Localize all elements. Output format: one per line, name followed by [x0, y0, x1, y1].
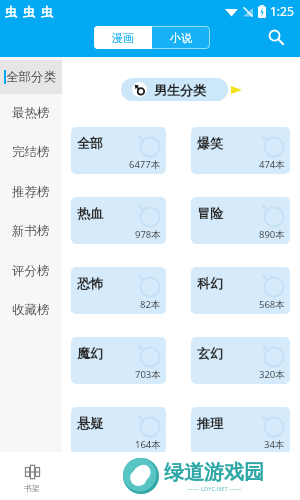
- staticText: 科幻: [197, 275, 223, 291]
- staticText: 164本: [135, 438, 161, 451]
- staticText: 魔幻: [77, 345, 103, 361]
- button[interactable]: Search: [264, 25, 288, 49]
- button[interactable]: 全部: [71, 127, 166, 174]
- staticText: —— LDYC.NET ——: [187, 485, 242, 493]
- staticText: 最热榜: [12, 105, 50, 121]
- staticText: 全部分类: [6, 69, 56, 85]
- staticText: 890本: [259, 228, 285, 241]
- staticText: 虫: [5, 4, 17, 19]
- button[interactable]: 小说: [152, 26, 210, 49]
- staticText: 推理: [197, 415, 223, 431]
- button[interactable]: 恐怖: [71, 267, 166, 314]
- staticText: 漫画: [112, 31, 134, 45]
- button[interactable]: 新书榜: [0, 211, 62, 250]
- button[interactable]: 收藏榜: [0, 290, 62, 329]
- button[interactable]: 悬疑: [71, 407, 166, 454]
- button[interactable]: 推理: [191, 407, 290, 454]
- staticText: 绿道游戏园: [164, 460, 264, 485]
- button[interactable]: 科幻: [191, 267, 290, 314]
- staticText: 568本: [259, 298, 285, 311]
- staticText: 新书榜: [12, 223, 50, 239]
- staticText: 完结榜: [12, 144, 50, 160]
- staticText: 收藏榜: [12, 302, 50, 318]
- staticText: 虫: [41, 4, 53, 19]
- button[interactable]: 书架: [24, 465, 40, 493]
- button[interactable]: 魔幻: [71, 337, 166, 384]
- staticText: 82本: [140, 298, 161, 311]
- button[interactable]: 爆笑: [191, 127, 290, 174]
- button[interactable]: 漫画: [94, 26, 152, 49]
- staticText: 虫: [23, 4, 35, 19]
- button[interactable]: 热血: [71, 197, 166, 244]
- staticText: 6477本: [129, 158, 161, 171]
- staticText: 推荐榜: [12, 184, 50, 200]
- staticText: 978本: [135, 228, 161, 241]
- staticText: 34本: [264, 438, 285, 451]
- button[interactable]: 全部分类: [0, 60, 62, 94]
- button[interactable]: 男生分类: [121, 78, 228, 101]
- staticText: 320本: [259, 368, 285, 381]
- staticText: 恐怖: [77, 275, 103, 291]
- button[interactable]: 推荐榜: [0, 172, 62, 211]
- staticText: 703本: [135, 368, 161, 381]
- staticText: 书架: [24, 483, 40, 493]
- button[interactable]: 最热榜: [0, 93, 62, 132]
- staticText: 玄幻: [197, 345, 223, 361]
- staticText: 冒险: [197, 205, 223, 221]
- staticText: 474本: [259, 158, 285, 171]
- button[interactable]: 完结榜: [0, 132, 62, 171]
- staticText: 1:25: [270, 3, 294, 19]
- staticText: 评分榜: [12, 263, 50, 279]
- staticText: 小说: [170, 31, 192, 45]
- staticText: 爆笑: [197, 135, 223, 151]
- staticText: 男生分类: [154, 82, 206, 98]
- button[interactable]: 冒险: [191, 197, 290, 244]
- staticText: 全部: [77, 135, 103, 151]
- button[interactable]: 玄幻: [191, 337, 290, 384]
- button[interactable]: 评分榜: [0, 251, 62, 290]
- staticText: 热血: [77, 205, 103, 221]
- staticText: 悬疑: [77, 415, 103, 431]
